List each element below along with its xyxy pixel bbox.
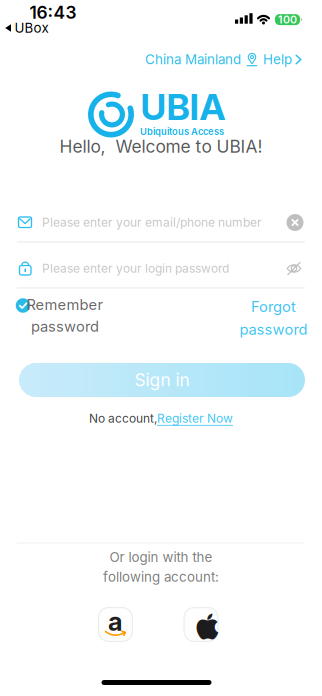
staticText: Ubiquitous Access — [140, 126, 224, 137]
button[interactable]: Remember — [26, 296, 103, 335]
button[interactable]: Sign in — [19, 363, 305, 397]
staticText: following account: — [103, 569, 219, 585]
button[interactable] — [286, 214, 303, 231]
staticText: Remember — [26, 296, 103, 313]
staticText: password — [31, 318, 99, 335]
staticText: No account, — [89, 411, 157, 426]
button[interactable]: Help — [263, 52, 302, 67]
staticText: Hello, Welcome to UBIA! — [59, 136, 262, 157]
button[interactable] — [17, 206, 305, 242]
staticText: Forgot — [251, 298, 296, 315]
button[interactable] — [16, 298, 30, 313]
button[interactable]: Register Now — [157, 411, 233, 426]
staticText: China Mainland — [145, 52, 241, 67]
staticText: Help — [263, 52, 292, 67]
button[interactable]:  — [183, 607, 218, 642]
staticText:  — [196, 613, 218, 641]
button[interactable] — [285, 260, 302, 277]
staticText: Or login with the — [109, 549, 212, 565]
staticText: password — [239, 321, 307, 338]
staticText: UBox — [14, 20, 48, 36]
staticText: Please enter your login password — [42, 261, 229, 276]
button[interactable] — [17, 252, 305, 288]
staticText: Register Now — [157, 411, 233, 426]
staticText: a — [108, 607, 123, 636]
staticText: Please enter your email/phone number — [42, 215, 262, 230]
button[interactable]: China Mainland — [145, 52, 258, 67]
staticText: Sign in — [134, 370, 189, 390]
button[interactable]: Forgot — [239, 298, 307, 338]
staticText: 16:43 — [29, 2, 76, 23]
button[interactable]: a — [98, 607, 133, 642]
staticText: 100 — [278, 13, 297, 26]
staticText: UBIA — [140, 86, 225, 128]
